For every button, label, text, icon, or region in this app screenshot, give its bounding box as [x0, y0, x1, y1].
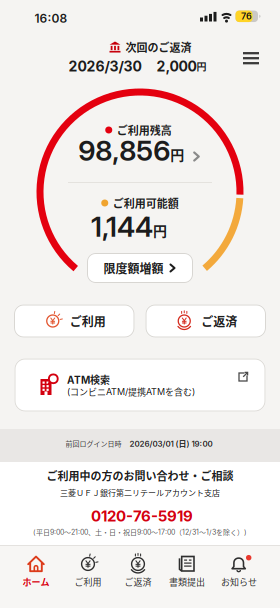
staticText: ご返済 — [124, 575, 151, 588]
staticText: 2,000 — [156, 58, 196, 75]
staticText: 三菱ＵＦＪ銀行第二リテールアカウント支店 — [60, 487, 220, 498]
staticText: ご利用中の方のお問い合わせ・ご相談 — [46, 468, 233, 483]
button[interactable]: ホーム — [10, 550, 62, 598]
staticText: 1,144 — [91, 210, 153, 243]
staticText: (平日9:00〜21:00、土・日・祝日9:00〜17:00（12/31〜1/3… — [33, 527, 247, 537]
button[interactable]: ご返済 — [112, 550, 164, 598]
button[interactable]: 0120-76-5919 — [91, 507, 193, 525]
staticText: 円 — [153, 220, 167, 240]
staticText: 円 — [170, 144, 184, 164]
staticText: 0120-76-5919 — [91, 507, 193, 525]
button[interactable]: ご利用 — [14, 304, 134, 337]
staticText: 書類提出 — [169, 575, 205, 588]
button[interactable]: お知らせ — [213, 550, 265, 598]
staticText: ご利用 — [70, 312, 106, 329]
staticText: (コンビニATM/提携ATMを含む) — [67, 385, 195, 398]
staticText: 16:08 — [34, 11, 67, 26]
button[interactable]: メニュー — [237, 46, 265, 71]
button[interactable]: 98,856 — [78, 134, 201, 167]
staticText: ご返済 — [201, 312, 237, 329]
button[interactable]: ご返済 — [145, 304, 266, 337]
button[interactable]: ご利用 — [62, 550, 114, 598]
staticText: 次回のご返済 — [125, 39, 191, 55]
staticText: 限度額増額 — [103, 259, 163, 276]
staticText: ATM検索 — [67, 372, 110, 386]
staticText: 2026/03/01 (日) 19:00 — [129, 438, 212, 449]
button[interactable]: 限度額増額 — [87, 253, 193, 283]
staticText: 円 — [196, 59, 206, 73]
staticText: 前回ログイン日時 — [65, 439, 121, 448]
staticText: 98,856 — [78, 134, 170, 167]
staticText: ご利用可能額 — [113, 195, 179, 211]
staticText: ご利用残高 — [117, 122, 172, 138]
staticText: 2026/3/30 — [68, 58, 141, 75]
staticText: 76 — [241, 11, 252, 22]
button[interactable]: 書類提出 — [161, 550, 213, 598]
staticText: お知らせ — [221, 575, 257, 588]
staticText: ホーム — [22, 575, 49, 588]
staticText: ご利用 — [74, 575, 101, 588]
button[interactable]: ATM検索 — [14, 358, 265, 411]
